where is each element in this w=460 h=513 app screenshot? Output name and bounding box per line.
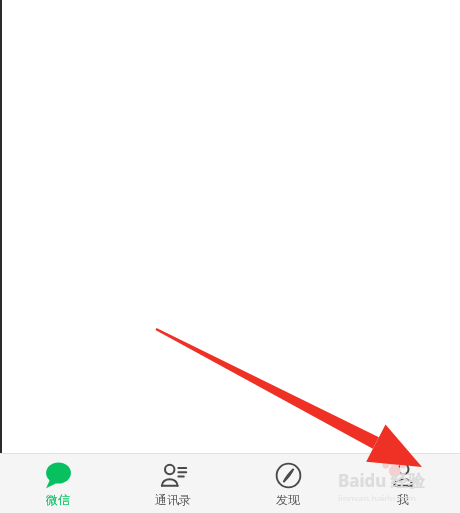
staticText: 我 [397, 492, 409, 507]
other: 通讯录 [160, 462, 187, 489]
staticText: jingyan.baidu.com [338, 492, 416, 501]
staticText: 微信 [46, 492, 70, 507]
other: 微信 [45, 462, 72, 489]
button[interactable]: 我 [345, 453, 460, 507]
button[interactable]: 通讯录 [115, 453, 230, 507]
other: 发现 [275, 462, 302, 489]
button[interactable]: 微信 [0, 453, 115, 507]
other: 我 [390, 462, 417, 489]
staticText: 发现 [276, 492, 300, 507]
staticText: 通讯录 [155, 492, 191, 507]
staticText: Baidu 经验 [338, 469, 425, 492]
button[interactable]: 发现 [230, 453, 345, 507]
